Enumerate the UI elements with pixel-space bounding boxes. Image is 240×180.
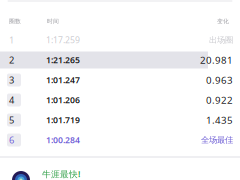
button[interactable]: 6 <box>0 130 240 150</box>
staticText: 5 <box>9 114 14 126</box>
button[interactable]: 5 <box>0 110 240 130</box>
staticText: 牛涯最快! <box>42 168 80 180</box>
staticText: 1:01.247 <box>46 74 80 86</box>
staticText: 3 <box>9 74 14 86</box>
button[interactable]: 4 <box>0 90 240 110</box>
staticText: 1:21.265 <box>46 54 80 66</box>
button[interactable]: 2 <box>0 50 240 70</box>
button[interactable]: 1 <box>0 30 240 50</box>
button[interactable]: 3 <box>0 70 240 90</box>
staticText: 全场最佳 <box>201 135 233 145</box>
staticText: 0.963 <box>206 73 233 87</box>
staticText: 1:01.206 <box>46 94 80 106</box>
staticText: 变化 <box>217 18 229 25</box>
staticText: 出场圈 <box>209 35 233 45</box>
staticText: 1.435 <box>206 113 233 127</box>
staticText: 1:17.259 <box>46 34 80 46</box>
staticText: 1:00.284 <box>46 134 80 146</box>
staticText: 20.981 <box>200 53 233 67</box>
staticText: 6 <box>9 134 14 146</box>
staticText: 4 <box>9 94 14 106</box>
staticText: 0.922 <box>206 93 233 107</box>
staticText: 圈数 <box>9 18 21 25</box>
staticText: 时间 <box>47 18 59 25</box>
staticText: 1 <box>9 34 14 46</box>
staticText: 1:01.719 <box>46 114 80 126</box>
staticText: 2 <box>9 54 14 66</box>
button[interactable]: 牛涯最快! <box>0 158 240 180</box>
